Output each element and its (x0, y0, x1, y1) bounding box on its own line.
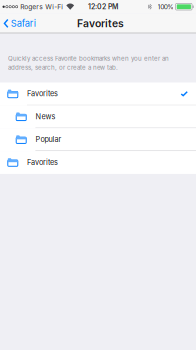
staticText: Rogers Wi-Fi (20, 3, 63, 11)
staticText: News (35, 112, 55, 121)
staticText: Popular (35, 135, 61, 144)
staticText: 100% (158, 3, 174, 11)
staticText: Quickly access Favorite bookmarks when y… (8, 55, 169, 71)
staticText: Favorites (27, 158, 58, 167)
button[interactable]: Favorites (0, 151, 196, 174)
button[interactable]: News (0, 105, 196, 128)
staticText: Safari (11, 18, 36, 29)
button[interactable]: Safari (0, 14, 41, 33)
button[interactable]: Favorites (0, 82, 196, 105)
staticText: Favorites (77, 17, 124, 30)
staticText: Favorites (27, 89, 58, 98)
staticText: 12:02 PM (88, 3, 118, 11)
button[interactable]: Popular (0, 128, 196, 151)
